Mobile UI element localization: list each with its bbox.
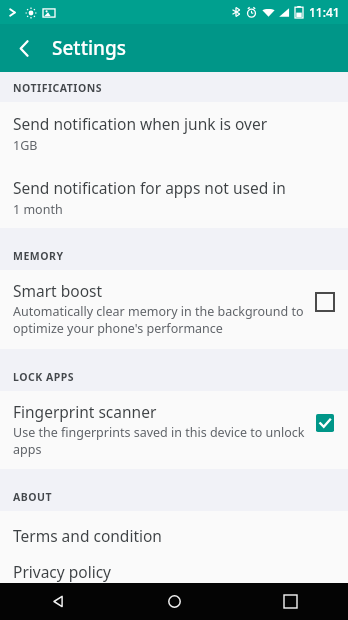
staticText: LOCK APPS [13,370,75,384]
other: Enabled [316,414,334,432]
button[interactable]: Smart boost [0,270,348,349]
button[interactable]: Fingerprint scanner [0,391,348,469]
staticText: Smart boost [13,280,103,301]
staticText: ABOUT [13,490,53,504]
staticText: Fingerprint scanner [13,401,157,422]
staticText: 1GB [13,137,38,154]
button[interactable]: Send notification when junk is over [0,102,348,166]
staticText: Automatically clear memory in the backgr… [13,303,304,336]
staticText: Send notification when junk is over [13,113,268,134]
button[interactable]: Back [0,24,48,72]
staticText: Privacy policy [13,561,111,582]
button[interactable]: Recent apps [232,583,348,620]
staticText: Terms and condition [13,525,162,546]
staticText: 1 month [13,201,63,218]
staticText: Send notification for apps not used in [13,177,286,198]
staticText: Settings [52,35,126,61]
button[interactable]: Privacy policy [0,559,348,583]
button[interactable]: Home [116,583,232,620]
button[interactable]: Terms and condition [0,511,348,559]
staticText: NOTIFICATIONS [13,81,103,95]
staticText: Use the fingerprints saved in this devic… [13,424,305,457]
button[interactable]: Send notification for apps not used in [0,166,348,228]
other: Disabled [316,293,334,311]
staticText: 11:41 [309,4,340,20]
staticText: MEMORY [13,249,64,263]
button[interactable]: Back [0,583,116,620]
